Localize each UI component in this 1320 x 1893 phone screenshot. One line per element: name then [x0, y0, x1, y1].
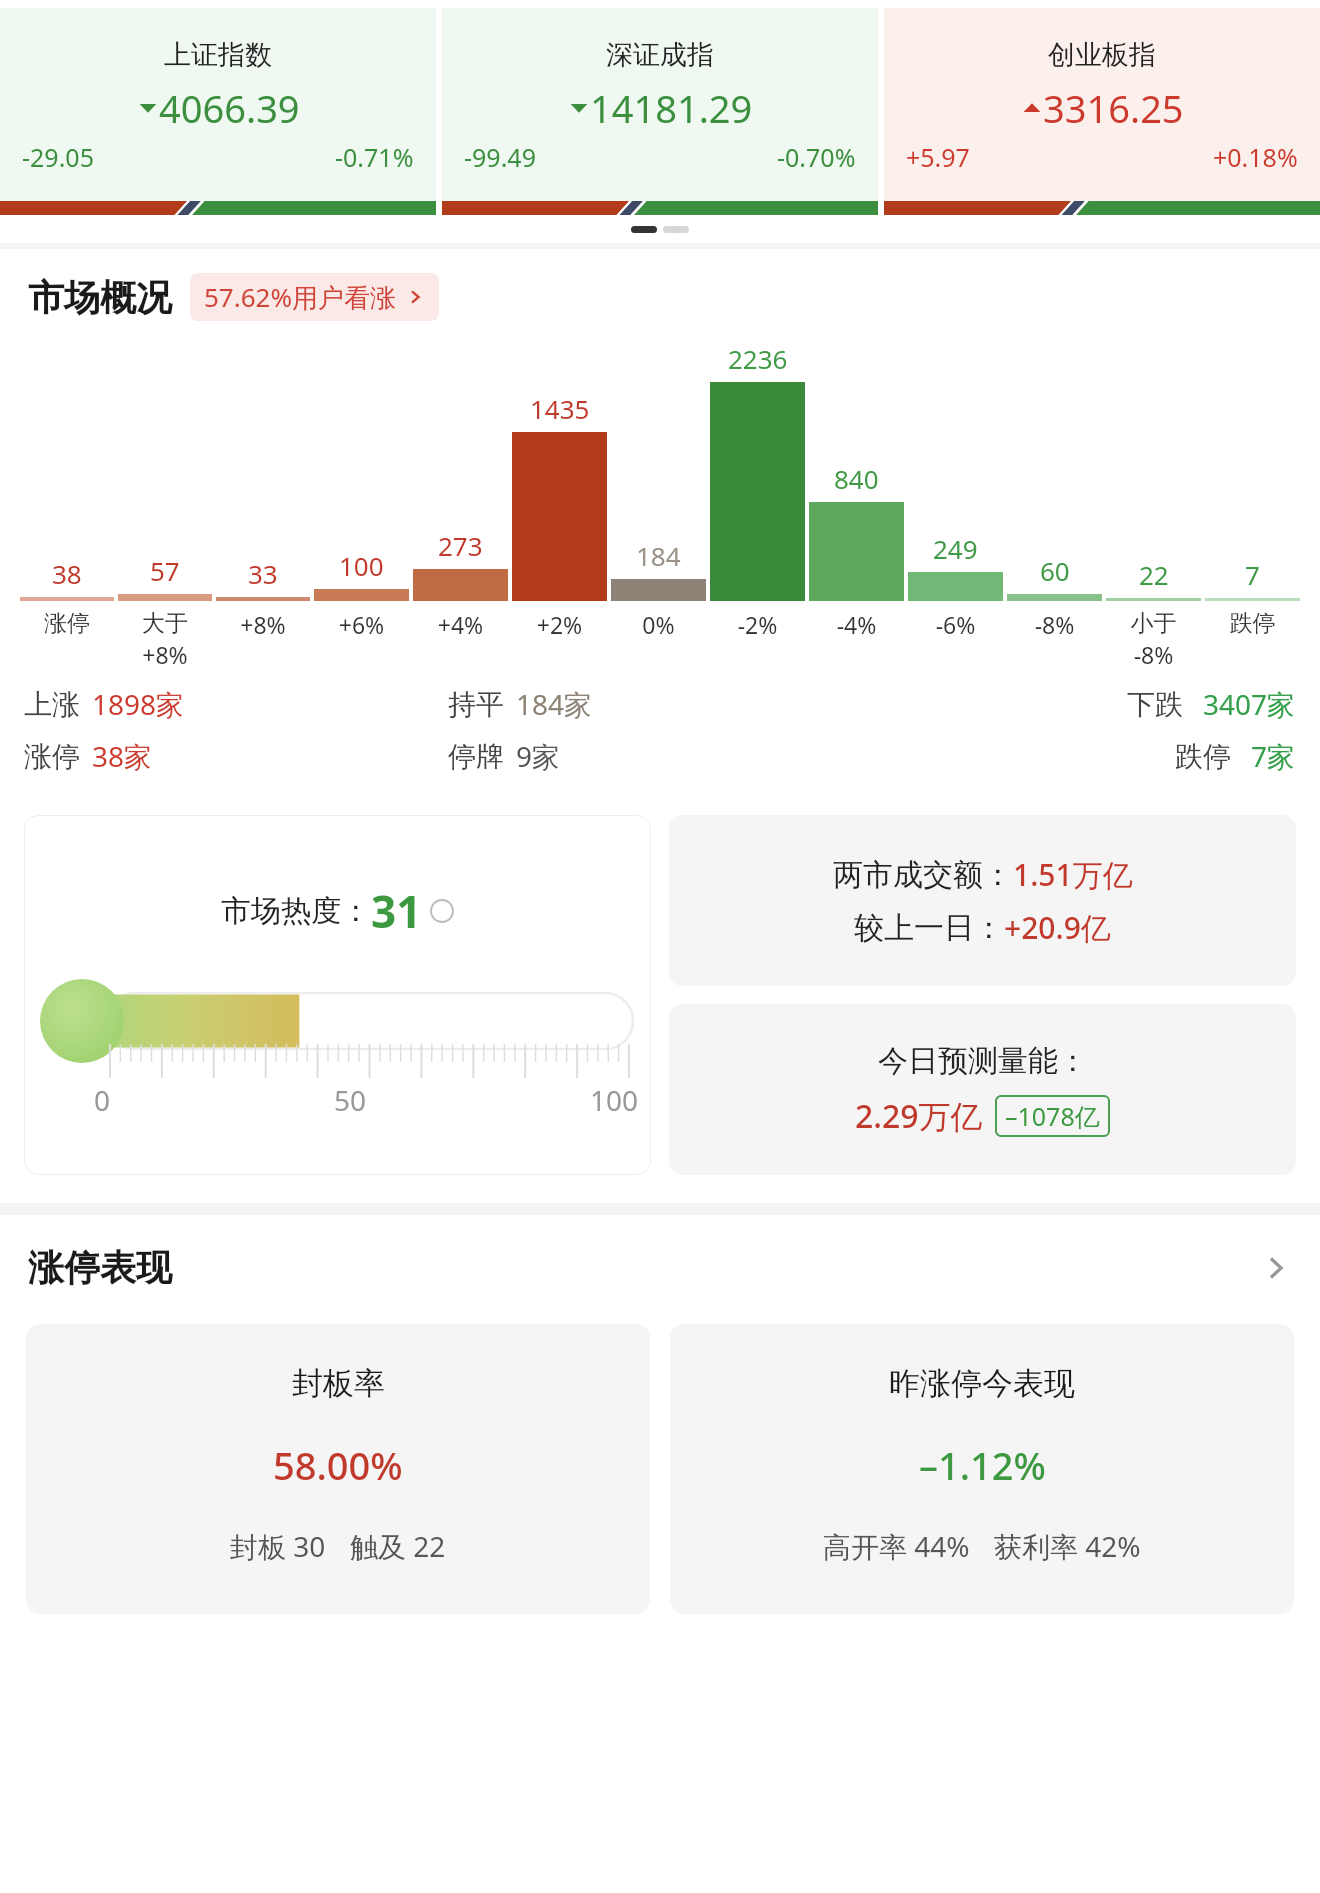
staticText: -8% [1007, 609, 1102, 640]
staticText: 1435 [530, 391, 590, 426]
staticText: 涨停表现 [28, 1245, 172, 1290]
staticText: 38家 [92, 737, 153, 775]
staticText: 涨停 [20, 609, 114, 638]
staticText: –1078亿 [1005, 1099, 1100, 1133]
staticText: 249 [933, 531, 978, 566]
button[interactable]: 深证成指 [442, 0, 878, 215]
staticText: +2% [512, 609, 607, 640]
staticText: 深证成指 [606, 38, 714, 72]
staticText: 触及 22 [350, 1527, 446, 1565]
staticText: +4% [413, 609, 508, 640]
staticText: 昨涨停今表现 [889, 1364, 1075, 1403]
staticText: 2.29万亿 [855, 1094, 983, 1138]
staticText: 33 [248, 556, 278, 591]
staticText: 22 [1139, 557, 1169, 592]
staticText: 市场概况 [28, 275, 172, 320]
staticText: –1.12% [919, 1439, 1046, 1491]
staticText: 跌停 [1205, 609, 1300, 638]
button[interactable]: 创业板指 [884, 0, 1320, 215]
staticText: +6% [314, 609, 409, 640]
staticText: 0% [611, 609, 706, 640]
staticText: 上证指数 [164, 38, 272, 72]
staticText: 57 [150, 553, 180, 588]
staticText: 273 [438, 528, 483, 563]
button[interactable]: 涨停表现 [0, 1245, 1320, 1290]
staticText: 涨停 [24, 739, 80, 774]
staticText: +0.18% [1213, 140, 1298, 174]
staticText: 7 [1245, 557, 1260, 592]
staticText: 封板率 [292, 1364, 385, 1403]
staticText: 31 [371, 881, 422, 941]
staticText: 小于 -8% [1106, 609, 1201, 670]
staticText: 大于 +8% [118, 609, 212, 670]
staticText: 50 [334, 1081, 367, 1119]
button[interactable]: 上证指数 [0, 0, 436, 215]
staticText: 3407家 [1203, 685, 1296, 723]
other: 查看更多 [1258, 1251, 1292, 1285]
other: 说明 [430, 899, 454, 923]
staticText: 3316.25 [1043, 82, 1184, 134]
staticText: 今日预测量能： [878, 1042, 1088, 1080]
staticText: 100 [590, 1081, 639, 1119]
staticText: 上涨 [24, 687, 80, 722]
staticText: 市场热度： [221, 892, 371, 930]
staticText: -0.70% [777, 140, 856, 174]
staticText: 100 [339, 548, 384, 583]
staticText: 184家 [516, 685, 593, 723]
staticText: 58.00% [273, 1439, 403, 1491]
button[interactable]: 昨涨停今表现 [670, 1324, 1294, 1614]
staticText: 2236 [728, 341, 788, 376]
button[interactable]: 市场热度： [24, 815, 651, 1175]
staticText: 跌停 [1175, 739, 1231, 774]
staticText: -29.05 [22, 140, 94, 174]
staticText: 持平 [448, 687, 504, 722]
staticText: 封板 30 [230, 1527, 326, 1565]
staticText: 9家 [516, 737, 561, 775]
staticText: 停牌 [448, 739, 504, 774]
staticText: 840 [834, 461, 879, 496]
staticText: 4066.39 [159, 82, 300, 134]
staticText: 1.51万亿 [1013, 854, 1133, 895]
staticText: 创业板指 [1048, 38, 1156, 72]
staticText: 1898家 [92, 685, 185, 723]
staticText: 38 [52, 556, 82, 591]
staticText: 7家 [1251, 737, 1296, 775]
staticText: 较上一日： [854, 909, 1004, 947]
staticText: 184 [636, 538, 681, 573]
staticText: -4% [809, 609, 904, 640]
staticText: +5.97 [906, 140, 970, 174]
button[interactable]: 封板率 [26, 1324, 650, 1614]
button[interactable]: 57.62%用户看涨 [190, 273, 439, 321]
staticText: -6% [908, 609, 1003, 640]
staticText: 0 [94, 1081, 111, 1119]
button[interactable]: 两市成交额： [669, 815, 1296, 986]
button[interactable]: 今日预测量能： [669, 1004, 1296, 1175]
staticText: 下跌 [1127, 687, 1183, 722]
staticText: -0.71% [335, 140, 414, 174]
staticText: 高开率 44% [823, 1527, 970, 1565]
staticText: 两市成交额： [833, 856, 1013, 894]
staticText: +20.9亿 [1004, 907, 1111, 948]
staticText: 57.62%用户看涨 [204, 279, 397, 315]
staticText: 60 [1040, 553, 1070, 588]
staticText: -99.49 [464, 140, 536, 174]
staticText: +8% [216, 609, 310, 640]
staticText: 获利率 42% [994, 1527, 1141, 1565]
staticText: 14181.29 [590, 82, 753, 134]
staticText: -2% [710, 609, 805, 640]
